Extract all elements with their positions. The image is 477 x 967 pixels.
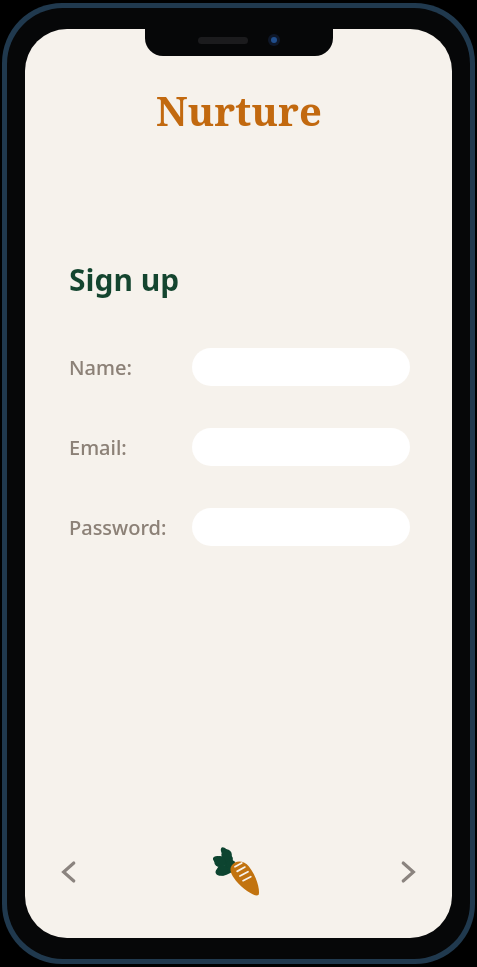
staticText: Email: (69, 434, 127, 461)
button[interactable]: Back (43, 846, 95, 898)
staticText: Name: (69, 354, 132, 381)
button[interactable] (192, 508, 410, 546)
button[interactable]: Carrot logo (201, 834, 277, 910)
button[interactable] (192, 348, 410, 386)
staticText: Nurture (156, 83, 322, 137)
button[interactable]: Next (382, 846, 434, 898)
staticText: Password: (69, 514, 167, 541)
button[interactable] (192, 428, 410, 466)
staticText: Sign up (69, 259, 180, 300)
